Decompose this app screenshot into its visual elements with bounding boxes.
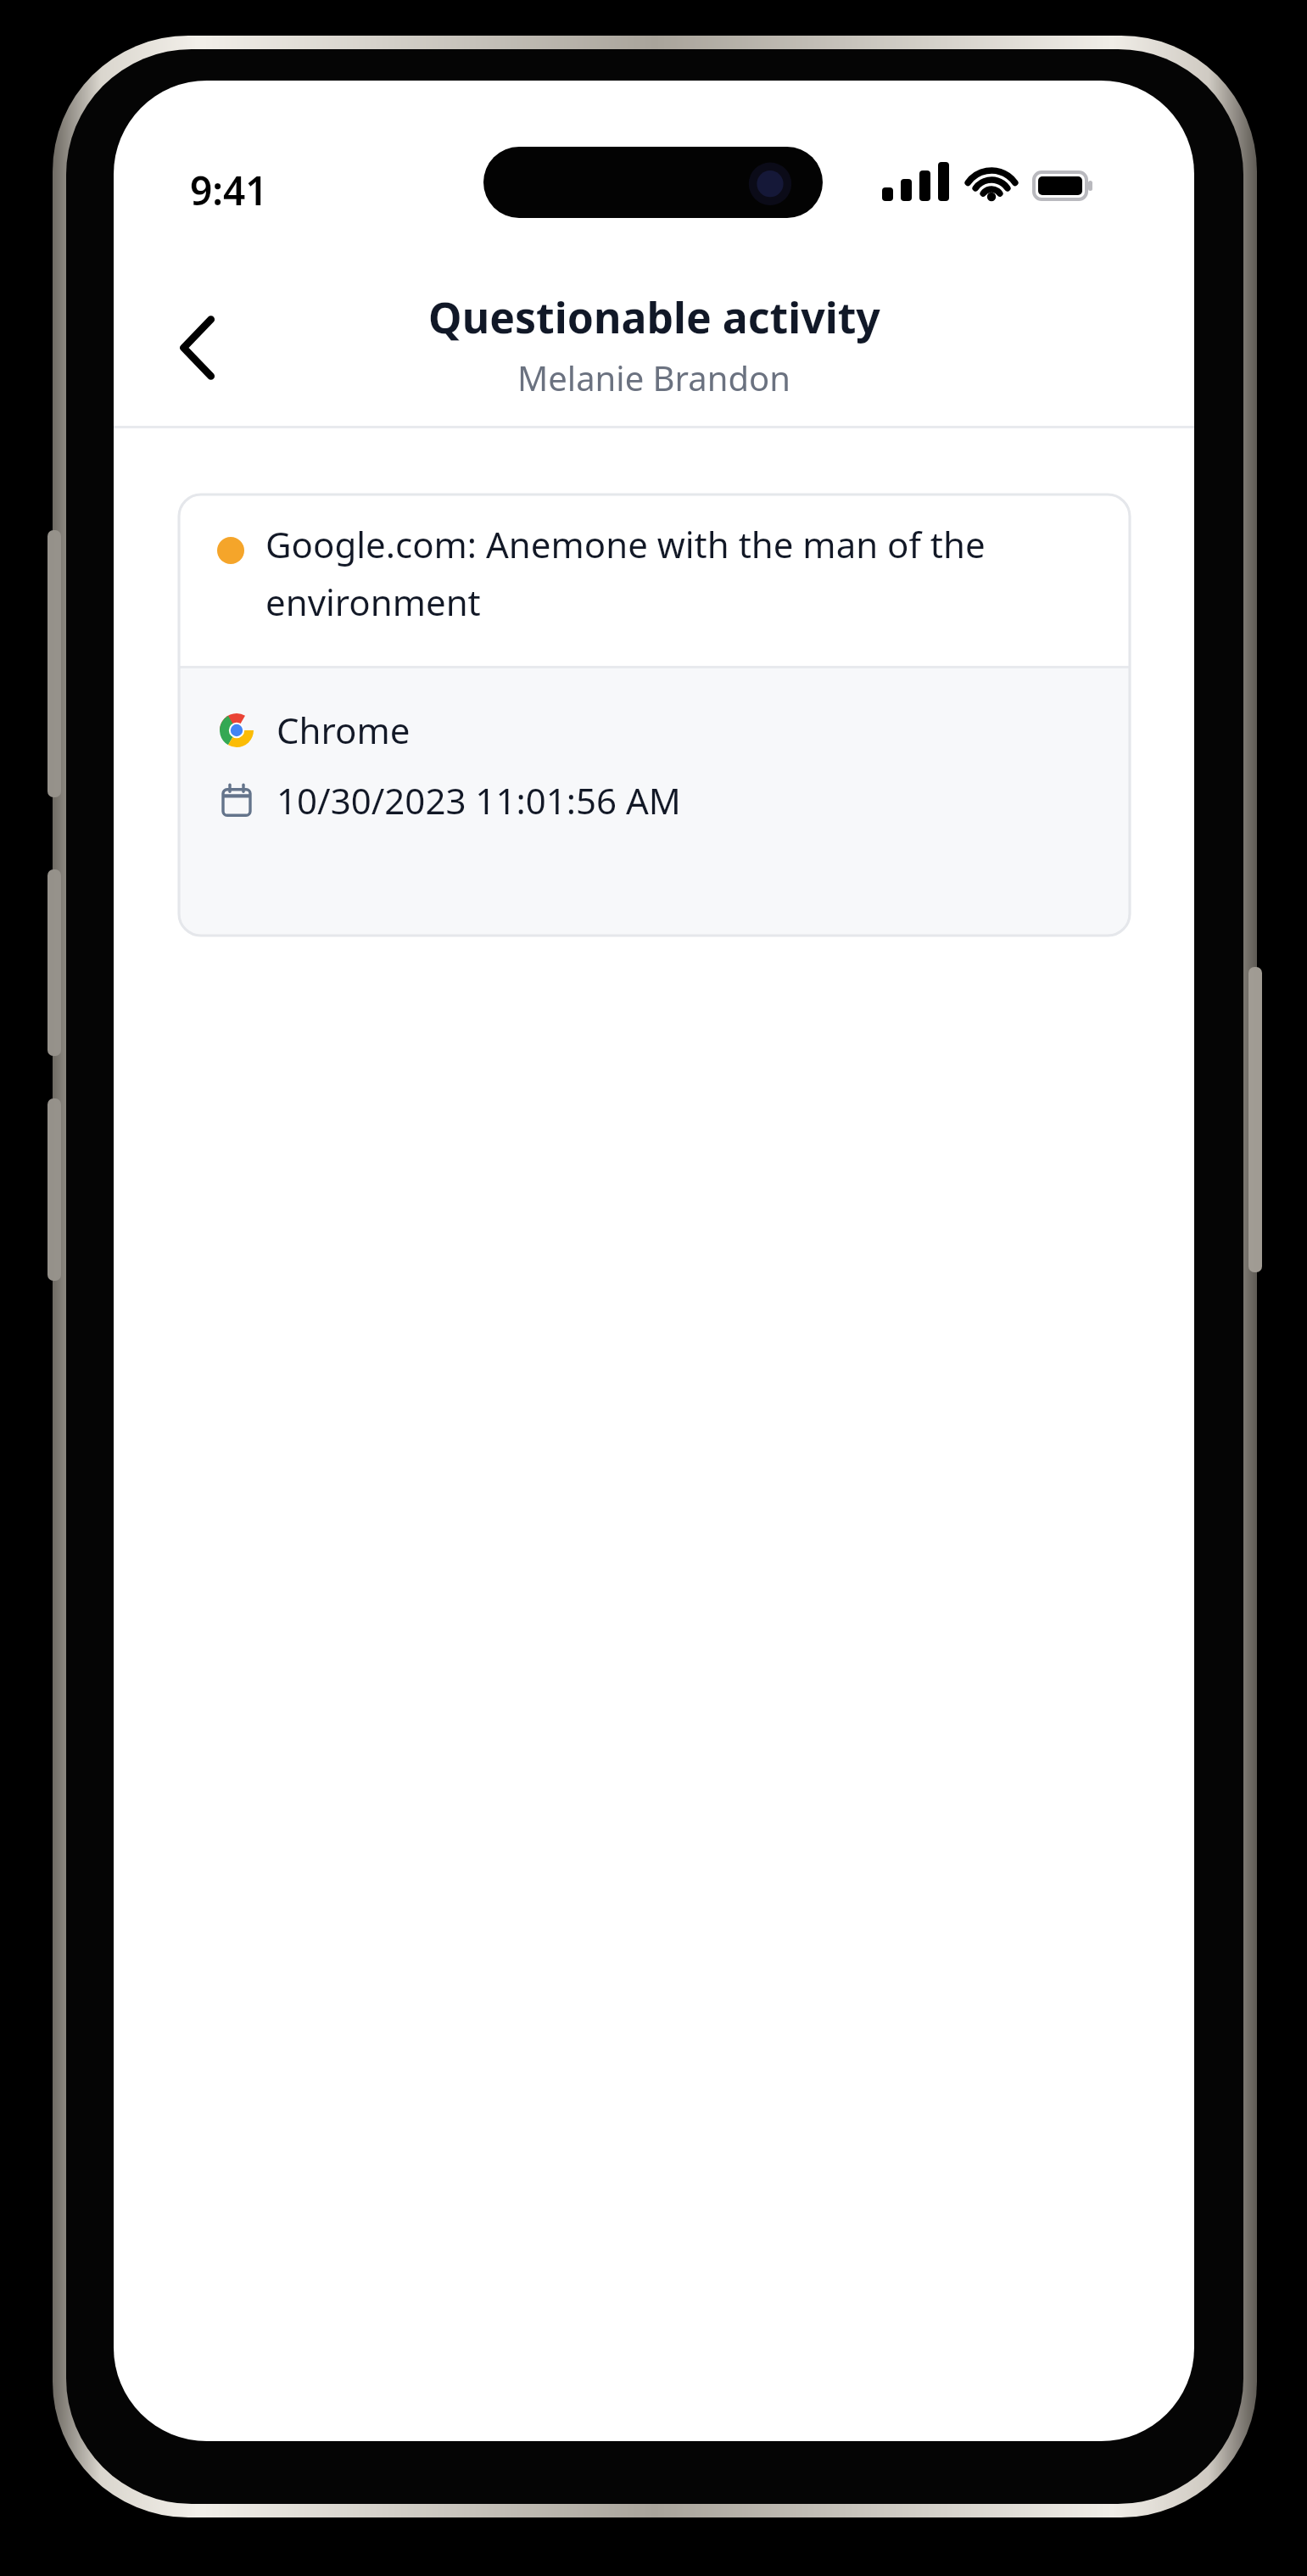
staticText: Melanie Brandon <box>517 355 790 400</box>
staticText: 9:41 <box>190 164 268 217</box>
button[interactable]: Google.com: Anemone with the man of the … <box>179 495 1130 936</box>
staticText: Questionable activity <box>428 288 880 346</box>
button[interactable]: Back <box>148 297 249 399</box>
staticText: Google.com: Anemone with the man of the … <box>265 520 1098 627</box>
staticText: 10/30/2023 11:01:56 AM <box>276 776 681 824</box>
staticText: Chrome <box>276 706 411 754</box>
